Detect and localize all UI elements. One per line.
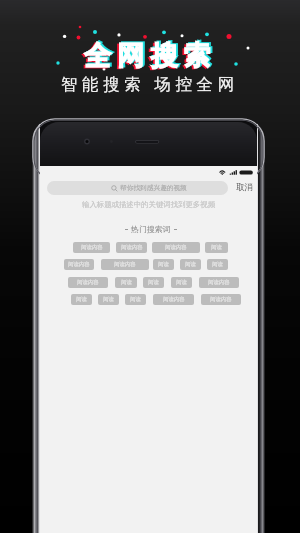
staticText: 智能搜索 场控全网 — [61, 72, 239, 95]
button[interactable]: 阅读 — [153, 259, 174, 270]
button[interactable]: 阅读 — [98, 294, 119, 305]
staticText: 阅读内容 — [68, 261, 90, 268]
staticText: 阅读内容 — [208, 279, 230, 286]
staticText: 阅读内容 — [210, 296, 232, 303]
staticText: 热门搜索词 — [131, 224, 171, 234]
button[interactable]: 阅读内容 — [153, 294, 194, 305]
staticText: 阅读内容 — [77, 279, 99, 286]
staticText: 阅读内容 — [165, 244, 187, 251]
staticText: 全网搜索 — [86, 38, 219, 72]
button[interactable]: 取消 — [236, 182, 253, 193]
staticText: 阅读 — [103, 296, 114, 303]
staticText: 阅读内容 — [114, 261, 136, 268]
staticText: 输入标题或描述中的关键词找到更多视频 — [40, 200, 257, 209]
staticText: 帮你找到感兴趣的视频 — [120, 184, 187, 192]
button[interactable]: 阅读 — [71, 294, 92, 305]
button[interactable]: 阅读 — [205, 242, 228, 253]
button[interactable]: 阅读 — [207, 259, 228, 270]
staticText: 阅读 — [212, 261, 223, 268]
button[interactable]: 帮你找到感兴趣的视频 — [47, 181, 228, 195]
button[interactable]: 阅读内容 — [101, 259, 149, 270]
staticText: 取消 — [236, 182, 253, 193]
button[interactable]: 阅读内容 — [152, 242, 200, 253]
button[interactable]: 阅读 — [125, 294, 146, 305]
staticText: 阅读 — [211, 244, 222, 251]
staticText: 阅读 — [185, 261, 196, 268]
button[interactable]: 阅读内容 — [201, 294, 241, 305]
staticText: 全网搜索 — [84, 39, 217, 73]
staticText: 阅读 — [176, 279, 187, 286]
button[interactable]: 阅读 — [180, 259, 201, 270]
staticText: 全网搜索 — [82, 40, 215, 74]
staticText: 阅读 — [130, 296, 141, 303]
staticText: 阅读内容 — [121, 244, 143, 251]
button[interactable]: 阅读内容 — [73, 242, 110, 253]
button[interactable]: 阅读 — [115, 277, 137, 288]
button[interactable]: 阅读内容 — [199, 277, 239, 288]
other: Phone front camera — [32, 118, 265, 533]
button[interactable]: 阅读内容 — [116, 242, 147, 253]
staticText: 阅读 — [121, 279, 132, 286]
staticText: 阅读内容 — [81, 244, 103, 251]
button[interactable]: 阅读内容 — [68, 277, 108, 288]
button[interactable]: 阅读 — [171, 277, 192, 288]
button[interactable]: 阅读 — [143, 277, 164, 288]
staticText: 阅读 — [76, 296, 87, 303]
button[interactable]: 阅读内容 — [64, 259, 94, 270]
staticText: 阅读 — [148, 279, 159, 286]
staticText: 阅读内容 — [163, 296, 185, 303]
staticText: 阅读 — [158, 261, 169, 268]
